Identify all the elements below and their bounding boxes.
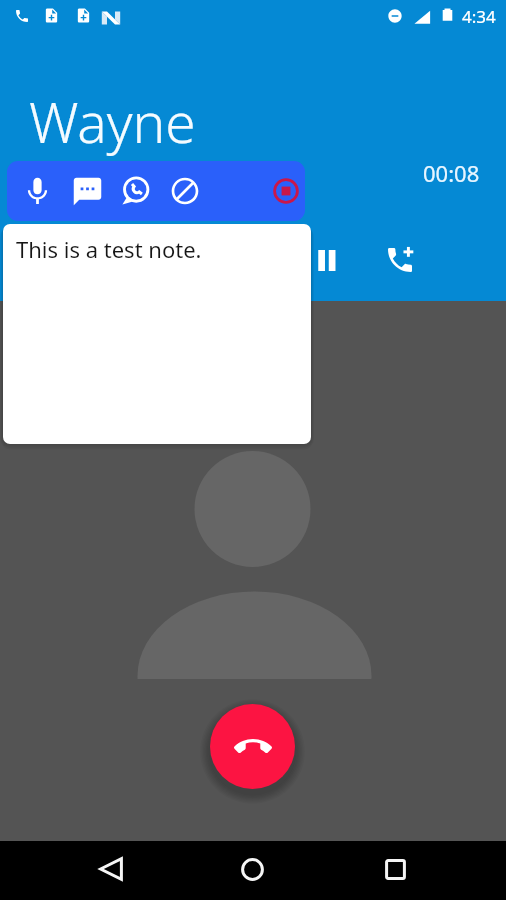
button[interactable]: Add call — [376, 232, 424, 280]
staticText: 4:34 — [462, 5, 496, 28]
staticText: Wayne — [29, 84, 196, 159]
button[interactable]: WhatsApp — [111, 167, 159, 215]
button[interactable]: Record voice note — [13, 167, 61, 215]
button[interactable]: Back — [83, 841, 139, 897]
button[interactable]: Text note — [63, 167, 111, 215]
button[interactable]: Recent apps — [367, 841, 423, 897]
button[interactable]: End call — [210, 704, 295, 789]
button[interactable]: Home — [224, 841, 280, 897]
staticText: 00:08 — [423, 158, 480, 188]
button[interactable]: This is a test note. — [3, 224, 311, 444]
button[interactable]: Stop recording — [273, 178, 299, 204]
button[interactable]: Pause call — [303, 236, 351, 284]
staticText: This is a test note. — [16, 234, 202, 264]
button[interactable]: Block caller — [161, 167, 209, 215]
